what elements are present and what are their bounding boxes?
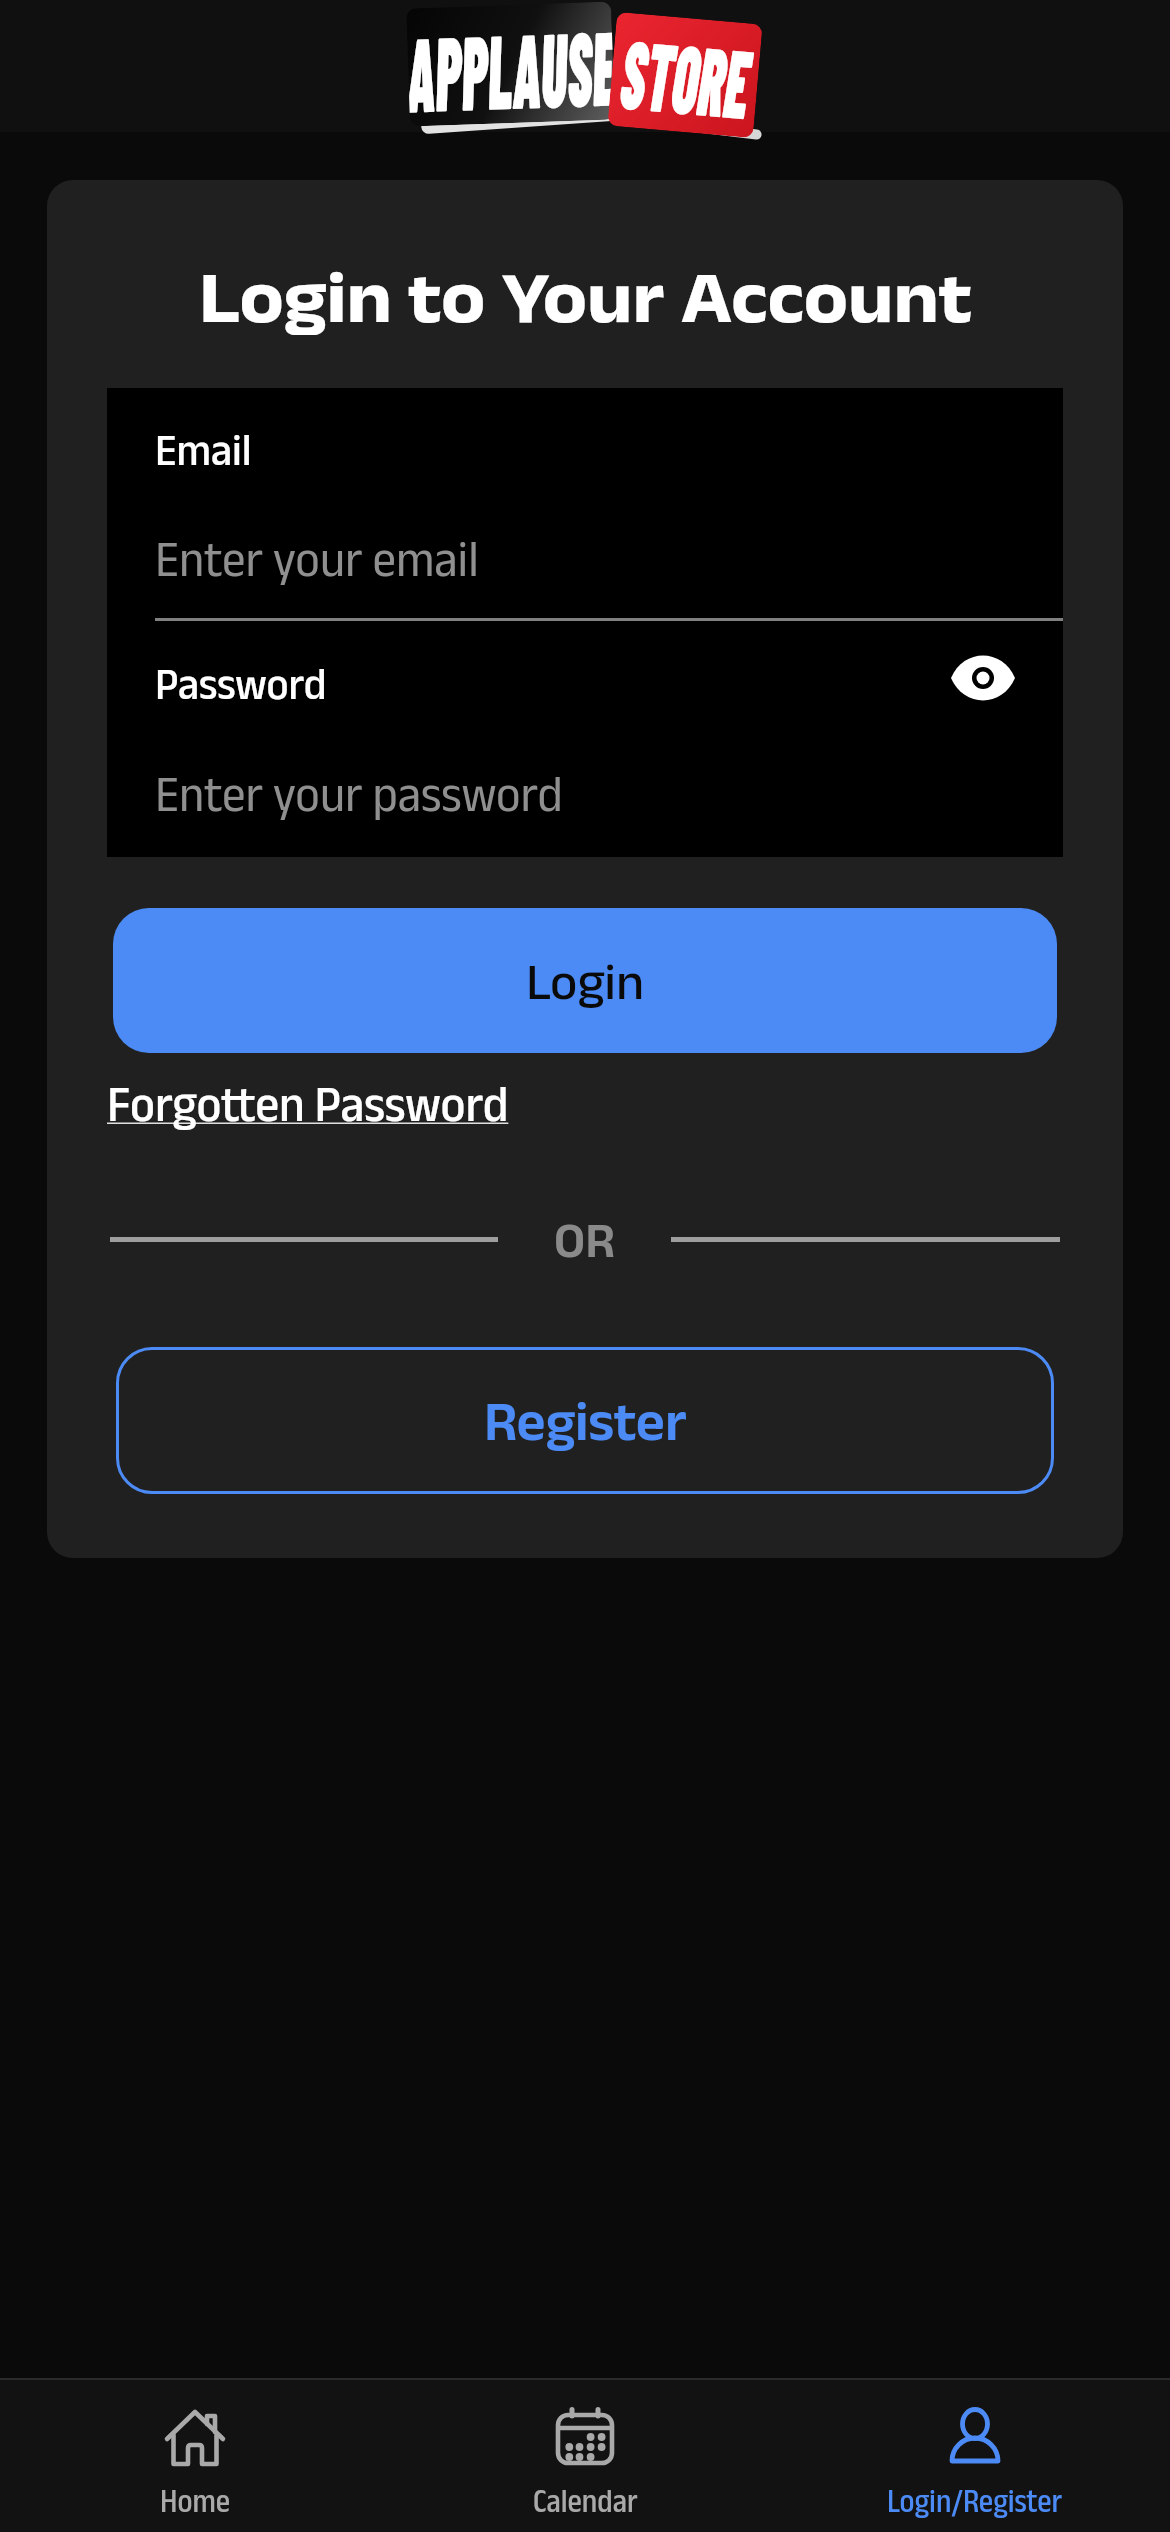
- staticText: Password: [155, 658, 327, 709]
- staticText: Login: [526, 952, 645, 1009]
- staticText: STORE: [617, 13, 754, 137]
- staticText: OR: [554, 1212, 615, 1267]
- staticText: Register: [484, 1390, 687, 1452]
- staticText: Email: [155, 424, 252, 475]
- staticText: APPLAUSE: [406, 1, 615, 127]
- staticText: Calendar: [533, 2481, 638, 2518]
- staticText: Login to Your Account: [199, 255, 972, 335]
- staticText: Enter your email: [155, 529, 479, 586]
- staticText: Login/Register: [887, 2481, 1063, 2518]
- staticText: Enter your password: [155, 764, 563, 821]
- staticText: Home: [160, 2481, 231, 2518]
- staticText: Forgotten Password: [107, 1074, 509, 1131]
